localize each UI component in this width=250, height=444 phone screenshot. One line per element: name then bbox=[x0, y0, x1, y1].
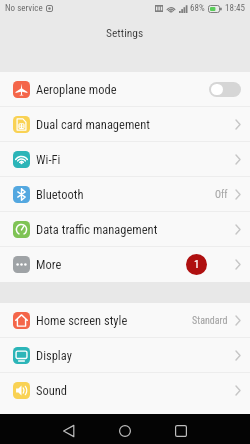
button[interactable]: Data traffic management bbox=[0, 212, 250, 247]
staticText: Bluetooth bbox=[36, 187, 84, 202]
staticText: Settings bbox=[106, 26, 144, 39]
staticText: No service bbox=[5, 3, 43, 14]
button[interactable]: Wi-Fi bbox=[0, 142, 250, 177]
staticText: 18:45 bbox=[225, 3, 245, 14]
button[interactable]: Recent apps bbox=[159, 419, 203, 443]
staticText: 68% bbox=[190, 3, 205, 14]
staticText: Data traffic management bbox=[36, 222, 158, 237]
staticText: Dual card management bbox=[36, 117, 150, 132]
staticText: Aeroplane mode bbox=[36, 82, 117, 97]
button[interactable]: Dual card management bbox=[0, 107, 250, 142]
staticText: 1 bbox=[194, 258, 200, 271]
staticText: Sound bbox=[36, 383, 68, 398]
button[interactable]: Home bbox=[103, 419, 147, 443]
button[interactable]: Sound bbox=[0, 373, 250, 408]
button[interactable]: Display bbox=[0, 338, 250, 373]
staticText: More bbox=[36, 257, 62, 272]
staticText: Off bbox=[215, 189, 228, 201]
button[interactable]: Aeroplane mode bbox=[0, 72, 250, 107]
staticText: Standard bbox=[192, 315, 228, 327]
button[interactable]: More bbox=[0, 247, 250, 282]
staticText: Home screen style bbox=[36, 313, 128, 328]
button[interactable]: Home screen style bbox=[0, 303, 250, 338]
staticText: Display bbox=[36, 348, 72, 363]
staticText: Wi-Fi bbox=[36, 152, 61, 167]
button[interactable]: Bluetooth bbox=[0, 177, 250, 212]
button[interactable]: Back bbox=[47, 419, 91, 443]
